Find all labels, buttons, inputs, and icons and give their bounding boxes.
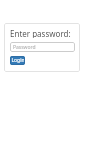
- staticText: Password: [13, 44, 36, 51]
- staticText: Enter password:: [10, 28, 71, 38]
- button[interactable]: Login: [10, 56, 25, 65]
- button[interactable]: Password: [10, 42, 75, 52]
- staticText: Login: [11, 57, 25, 64]
